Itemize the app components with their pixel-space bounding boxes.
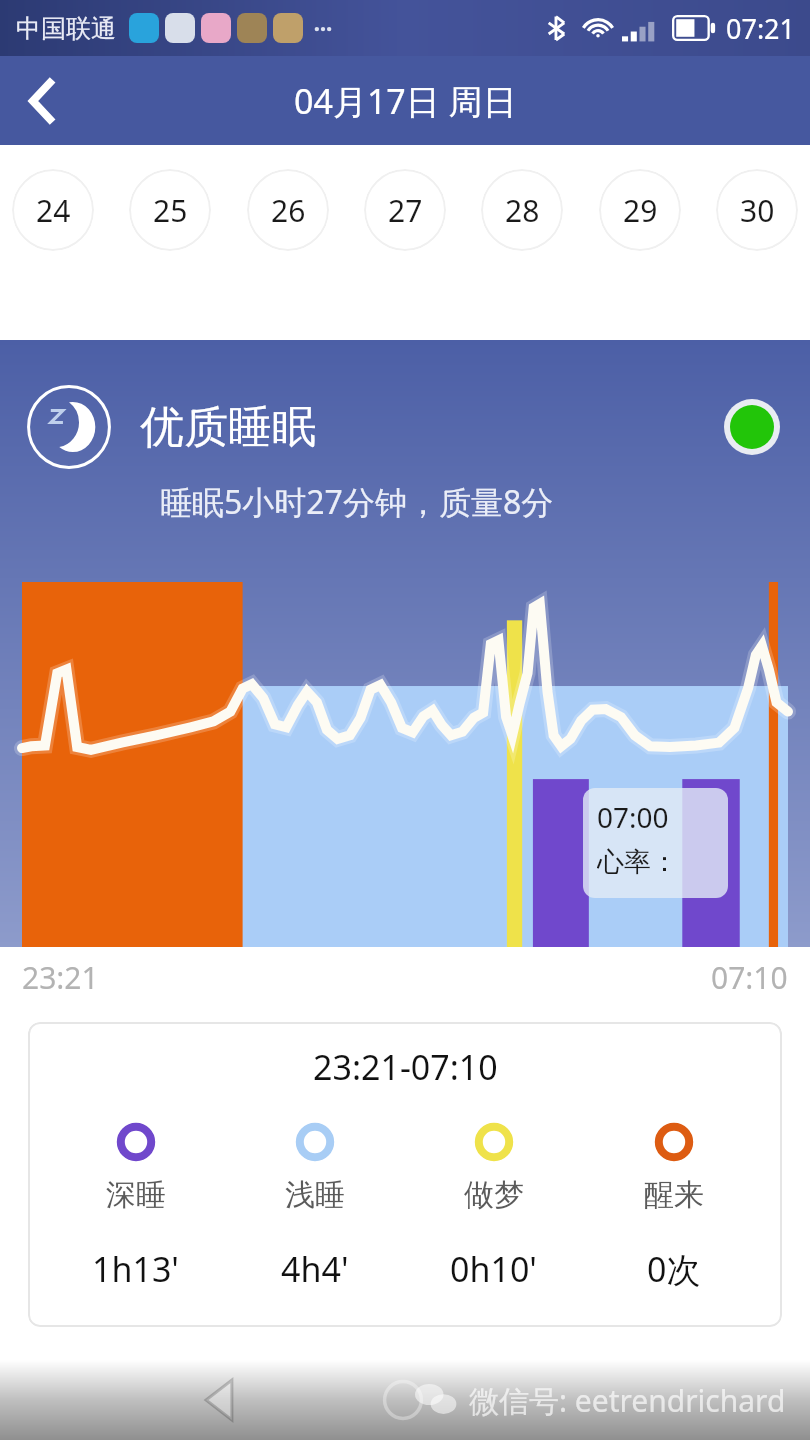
staticText: 07:10 [711,957,788,998]
staticText: 30 [740,190,775,231]
staticText: 做梦 [464,1176,524,1214]
staticText: 1h13' [92,1246,180,1292]
button[interactable]: Back [186,1365,256,1435]
button[interactable]: 26 [247,169,329,251]
button[interactable]: 27 [364,169,446,251]
staticText: 07:21 [726,10,796,47]
staticText: 优质睡眠 [140,400,316,455]
button[interactable]: 28 [481,169,563,251]
staticText: 4h4' [281,1246,349,1292]
staticText: 睡眠5小时27分钟，质量8分 [160,480,554,524]
staticText: 微信号: eetrendrichard [469,1380,786,1421]
staticText: 07:00 [597,798,669,836]
button[interactable]: 23:21-07:10 [28,1022,782,1327]
button[interactable]: Home [368,1365,438,1435]
staticText: 24 [36,190,71,231]
staticText: 26 [271,190,306,231]
staticText: 04月17日 周日 [294,78,517,124]
staticText: 27 [388,190,423,231]
button[interactable]: 24 [12,169,94,251]
staticText: 0h10' [450,1246,538,1292]
button[interactable]: 25 [129,169,211,251]
staticText: 浅睡 [285,1176,345,1214]
staticText: 中国联通 [16,13,116,44]
button[interactable]: 29 [599,169,681,251]
staticText: 0次 [647,1246,701,1292]
staticText: 28 [505,190,540,231]
staticText: 23:21-07:10 [313,1044,498,1090]
staticText: 29 [623,190,658,231]
button[interactable]: 30 [716,169,798,251]
staticText: 深睡 [106,1176,166,1214]
staticText: 醒来 [644,1176,704,1214]
staticText: 23:21 [22,957,99,998]
staticText: 25 [153,190,188,231]
staticText: 心率： 60 [597,842,714,888]
button[interactable]: Back [6,64,80,138]
